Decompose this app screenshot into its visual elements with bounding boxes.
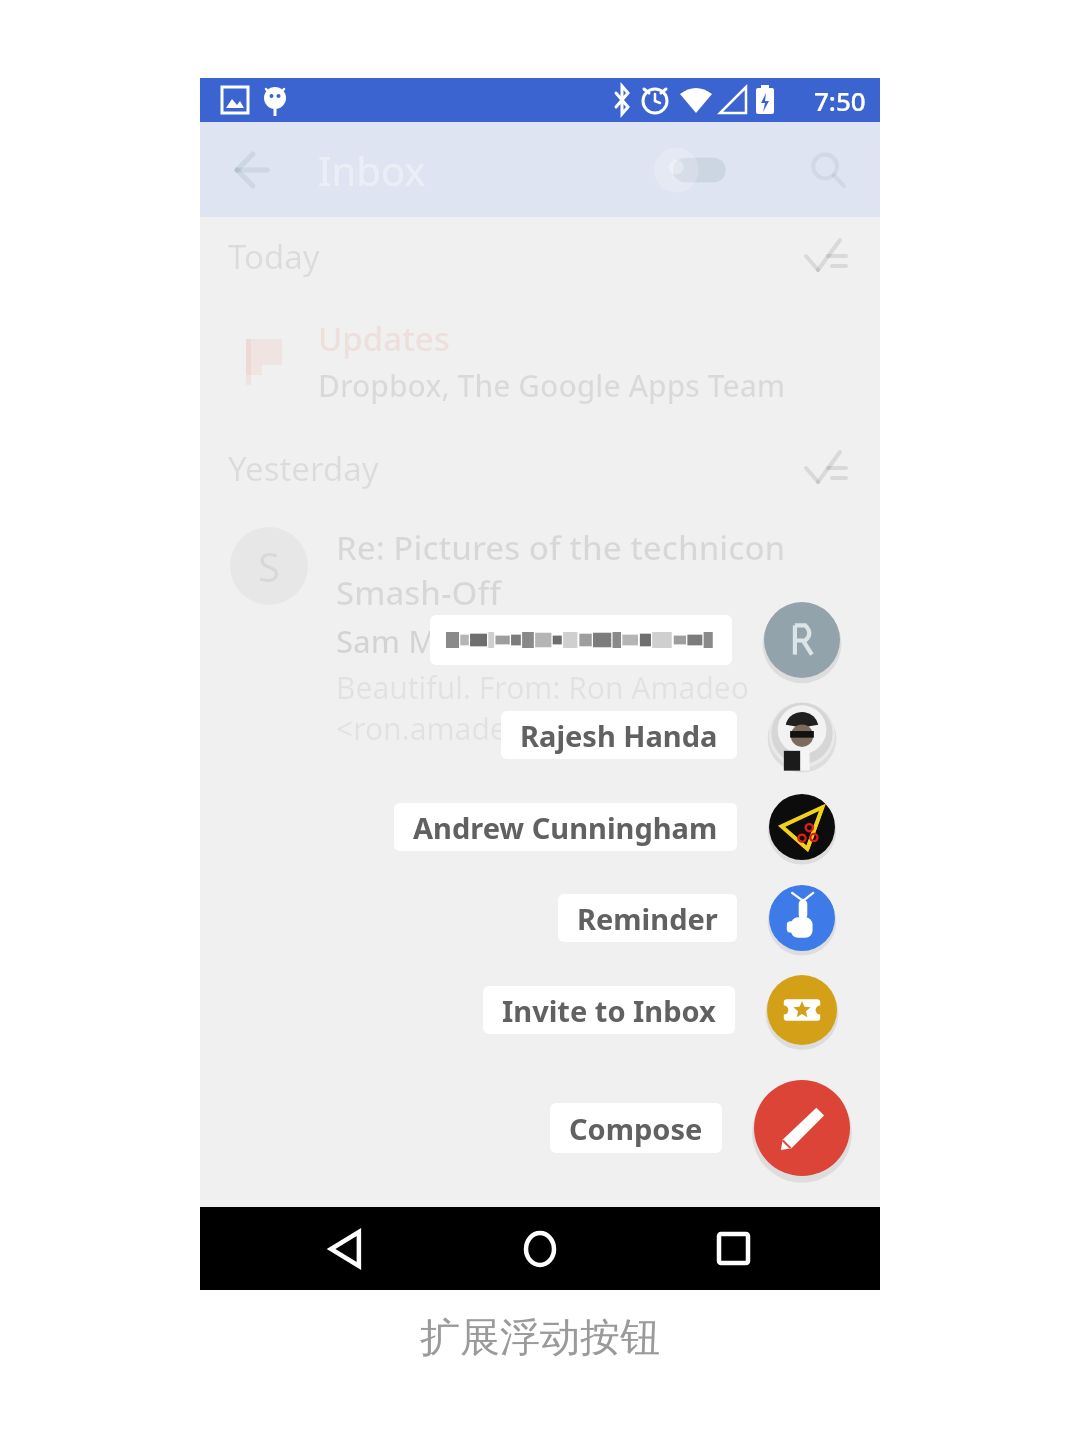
button[interactable]: Andrew Cunningham [769, 794, 835, 860]
staticText: Sam Machkovech [336, 620, 594, 662]
button[interactable]: S [200, 513, 880, 749]
staticText: 7:50 [814, 83, 866, 118]
button[interactable]: Recents [688, 1207, 778, 1290]
button[interactable]: Andrew Cunningham [394, 803, 737, 851]
button[interactable]: Compose [550, 1103, 722, 1153]
button[interactable]: Invite to Inbox [483, 986, 735, 1034]
button[interactable]: Home [495, 1207, 585, 1290]
button[interactable]: Search [798, 140, 858, 200]
staticText: Dropbox, The Google Apps Team [318, 365, 786, 406]
button[interactable]: Back [222, 142, 278, 198]
staticText: Invite to Inbox [502, 991, 716, 1030]
staticText: Rajesh Handa [520, 716, 718, 755]
staticText: Today [228, 234, 320, 279]
staticText: S [258, 539, 280, 593]
button[interactable]: Mark all done [796, 228, 852, 284]
button[interactable]: Rajesh Handa [501, 711, 737, 759]
button[interactable]: email [764, 602, 840, 678]
staticText: Inbox [318, 143, 426, 197]
staticText: Reminder [577, 899, 718, 938]
button[interactable]: Mark all done [796, 440, 852, 496]
button[interactable] [430, 615, 732, 665]
button[interactable]: Reminder [769, 885, 835, 951]
staticText: Updates [318, 316, 450, 361]
staticText: Beautiful. From: Ron Amadeo <ron.amadeo@… [336, 667, 880, 749]
button[interactable]: Reminder [558, 894, 737, 942]
staticText: 扩展浮动按钮 [420, 1312, 660, 1362]
button[interactable]: Updates [200, 301, 880, 421]
button[interactable]: Rajesh Handa [769, 702, 835, 768]
staticText: Andrew Cunningham [413, 808, 718, 847]
button[interactable]: Compose [754, 1080, 850, 1176]
button[interactable]: Pin toggle [640, 142, 750, 198]
button[interactable]: Invite to Inbox [767, 975, 837, 1045]
staticText: Yesterday [228, 446, 379, 491]
button[interactable]: Back [303, 1207, 393, 1290]
staticText: Compose [569, 1109, 703, 1148]
staticText: Re: Pictures of the technicon Smash-Off [336, 525, 880, 615]
